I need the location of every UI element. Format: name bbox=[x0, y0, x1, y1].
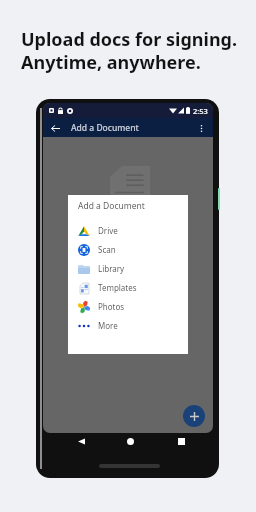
staticText: Add a Document bbox=[71, 122, 139, 134]
button[interactable]: Scan bbox=[68, 240, 188, 259]
staticText: More bbox=[98, 320, 118, 331]
button[interactable]: Drive bbox=[68, 221, 188, 240]
button[interactable]: Photos bbox=[68, 297, 188, 316]
button[interactable]: Home bbox=[121, 432, 139, 450]
staticText: 2:53 bbox=[193, 106, 208, 116]
button[interactable]: Add bbox=[183, 405, 205, 427]
staticText: Scan bbox=[98, 244, 116, 255]
staticText: Add a Document bbox=[78, 200, 145, 212]
button[interactable]: More options bbox=[193, 120, 209, 136]
staticText: Upload docs for signing. Anytime, anywhe… bbox=[21, 27, 238, 74]
button[interactable]: Back bbox=[72, 432, 90, 450]
button[interactable]: Library bbox=[68, 259, 188, 278]
staticText: Templates bbox=[98, 282, 137, 293]
staticText: Library bbox=[98, 263, 125, 274]
button[interactable]: Templates bbox=[68, 278, 188, 297]
button[interactable]: Back bbox=[47, 120, 63, 136]
staticText: Drive bbox=[98, 225, 118, 236]
button[interactable]: More bbox=[68, 316, 188, 335]
staticText: Photos bbox=[98, 301, 125, 312]
button[interactable]: Recents bbox=[172, 432, 190, 450]
